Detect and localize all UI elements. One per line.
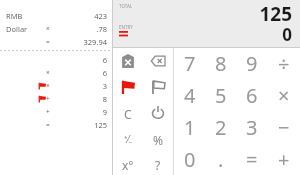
button[interactable]: 6 <box>0 53 112 66</box>
staticText: ÷ <box>278 50 290 77</box>
button[interactable]: Clear <box>115 100 141 126</box>
staticText: 0 <box>184 146 196 173</box>
button[interactable]: Plus minus <box>115 126 141 152</box>
staticText: × <box>46 24 50 33</box>
button[interactable]: Flag <box>115 74 141 100</box>
button[interactable]: 4 <box>174 79 205 111</box>
staticText: TOTAL <box>119 3 133 9</box>
button[interactable]: RMB <box>0 9 112 22</box>
staticText: . <box>218 146 224 173</box>
staticText: + <box>46 107 50 116</box>
staticText: 125 <box>0 120 107 130</box>
staticText: − <box>278 114 290 141</box>
staticText: ? <box>155 157 161 171</box>
button[interactable]: = <box>0 118 112 131</box>
button[interactable]: 7 <box>174 48 205 79</box>
button[interactable]: 9 <box>236 48 268 79</box>
button[interactable]: = <box>0 35 112 48</box>
button[interactable]: Power off <box>145 100 171 126</box>
staticText: 3 <box>0 81 107 91</box>
staticText: % <box>153 132 163 146</box>
staticText: + <box>46 94 50 103</box>
button[interactable]: + <box>0 105 112 118</box>
staticText: C <box>124 106 132 120</box>
staticText: 125 <box>113 1 292 23</box>
button[interactable]: × <box>0 66 112 79</box>
button[interactable]: 6 <box>236 79 268 111</box>
staticText: 6 <box>0 68 107 78</box>
button[interactable]: = <box>236 143 268 175</box>
staticText: 8 <box>0 94 107 104</box>
staticText: ⁺⁄₋ <box>124 132 133 146</box>
staticText: × <box>46 81 50 90</box>
staticText: 4 <box>184 82 196 109</box>
staticText: .78 <box>0 24 107 34</box>
button[interactable]: Power <box>115 152 141 175</box>
button[interactable]: Flag outline <box>145 74 171 100</box>
button[interactable]: + <box>268 143 300 175</box>
button[interactable]: 3 <box>236 111 268 143</box>
button[interactable]: 8 <box>205 48 236 79</box>
button[interactable]: Dollar <box>0 22 112 35</box>
staticText: + <box>278 146 290 173</box>
button[interactable]: . <box>205 143 236 175</box>
staticText: 5 <box>215 82 227 109</box>
staticText: 6 <box>0 55 107 65</box>
staticText: × <box>278 82 290 109</box>
button[interactable]: Clear tag <box>115 48 141 74</box>
staticText: 9 <box>0 107 107 117</box>
button[interactable]: 2 <box>205 111 236 143</box>
staticText: = <box>246 146 258 173</box>
staticText: = <box>46 37 50 46</box>
button[interactable]: Help <box>145 152 171 175</box>
staticText: 0 <box>113 23 292 46</box>
staticText: 2 <box>215 114 227 141</box>
button[interactable]: Backspace <box>145 48 171 74</box>
staticText: Dollar <box>6 24 28 34</box>
button[interactable]: Percent <box>145 126 171 152</box>
button[interactable]: 1 <box>174 111 205 143</box>
staticText: ENTRY <box>119 24 133 30</box>
staticText: RMB <box>6 11 23 21</box>
staticText: 7 <box>184 50 196 77</box>
staticText: 9 <box>246 50 258 77</box>
button[interactable]: + <box>0 92 112 105</box>
staticText: 8 <box>215 50 227 77</box>
staticText: 329.94 <box>0 37 107 47</box>
staticText: x° <box>122 157 134 171</box>
button[interactable]: 0 <box>174 143 205 175</box>
button[interactable]: ENTRY <box>113 23 300 47</box>
staticText: = <box>46 120 50 129</box>
button[interactable]: − <box>268 111 300 143</box>
staticText: 1 <box>184 114 196 141</box>
button[interactable]: × <box>0 79 112 92</box>
button[interactable]: ÷ <box>268 48 300 79</box>
button[interactable]: 5 <box>205 79 236 111</box>
staticText: × <box>46 68 50 77</box>
button[interactable]: × <box>268 79 300 111</box>
staticText: 3 <box>246 114 258 141</box>
button[interactable]: TOTAL <box>113 0 300 23</box>
staticText: 423 <box>0 11 107 21</box>
staticText: 6 <box>246 82 258 109</box>
